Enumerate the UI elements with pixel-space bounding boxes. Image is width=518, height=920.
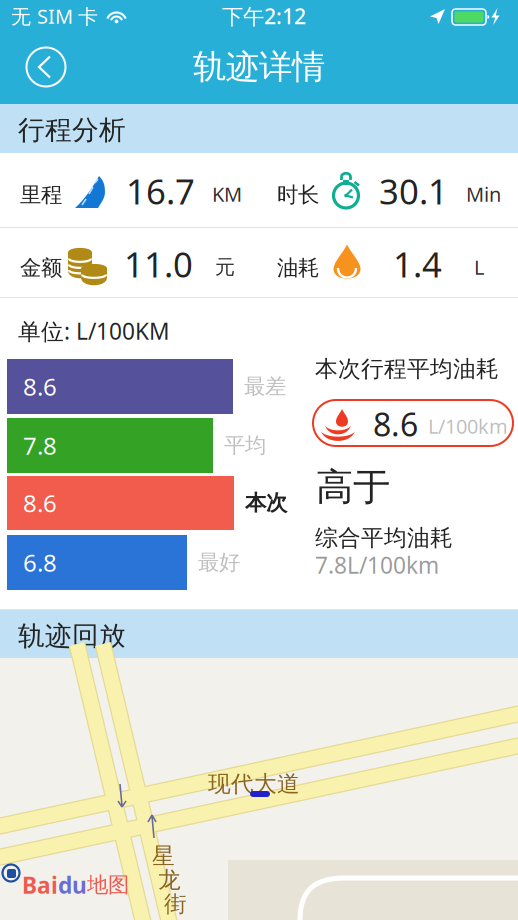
staticText: 16.7	[126, 167, 195, 215]
staticText: 时长	[277, 182, 319, 208]
staticText: KM	[212, 180, 242, 208]
staticText: 里程	[20, 182, 62, 208]
staticText: 星	[152, 842, 175, 870]
staticText: 龙	[158, 866, 181, 894]
button[interactable]: Back	[15, 36, 77, 98]
staticText: 综合平均油耗	[315, 524, 453, 552]
staticText: 本次行程平均油耗	[315, 355, 499, 383]
staticText: 金额	[20, 255, 62, 281]
staticText: Bai	[22, 870, 58, 900]
staticText: 街	[164, 890, 187, 918]
staticText: 元	[215, 254, 235, 280]
staticText: 下午2:12	[222, 1, 306, 31]
staticText: 高于	[316, 463, 390, 510]
staticText: L/100km	[428, 412, 508, 440]
staticText: 8.6	[23, 487, 57, 519]
staticText: 30.1	[379, 167, 448, 215]
staticText: 最差	[244, 373, 286, 400]
staticText: 无 SIM 卡	[11, 2, 98, 30]
staticText: 7.8L/100km	[315, 550, 439, 580]
staticText: L	[474, 253, 484, 281]
staticText: 1.4	[393, 240, 442, 288]
staticText: 单位: L/100KM	[18, 316, 170, 346]
staticText: 8.6	[23, 370, 57, 403]
staticText: Min	[466, 180, 501, 208]
staticText: 行程分析	[18, 113, 126, 147]
staticText: du	[58, 870, 87, 900]
staticText: 地图	[87, 872, 129, 898]
staticText: 8.6	[373, 402, 418, 446]
staticText: 7.8	[23, 429, 57, 462]
staticText: 轨迹详情	[193, 46, 325, 88]
staticText: 最好	[198, 549, 240, 576]
staticText: 轨迹回放	[18, 619, 126, 653]
staticText: 现代大道	[208, 770, 300, 798]
staticText: 油耗	[277, 255, 319, 281]
staticText: 11.0	[124, 240, 193, 288]
staticText: 本次	[245, 490, 287, 516]
staticText: 平均	[224, 432, 266, 459]
staticText: 6.8	[23, 546, 57, 579]
